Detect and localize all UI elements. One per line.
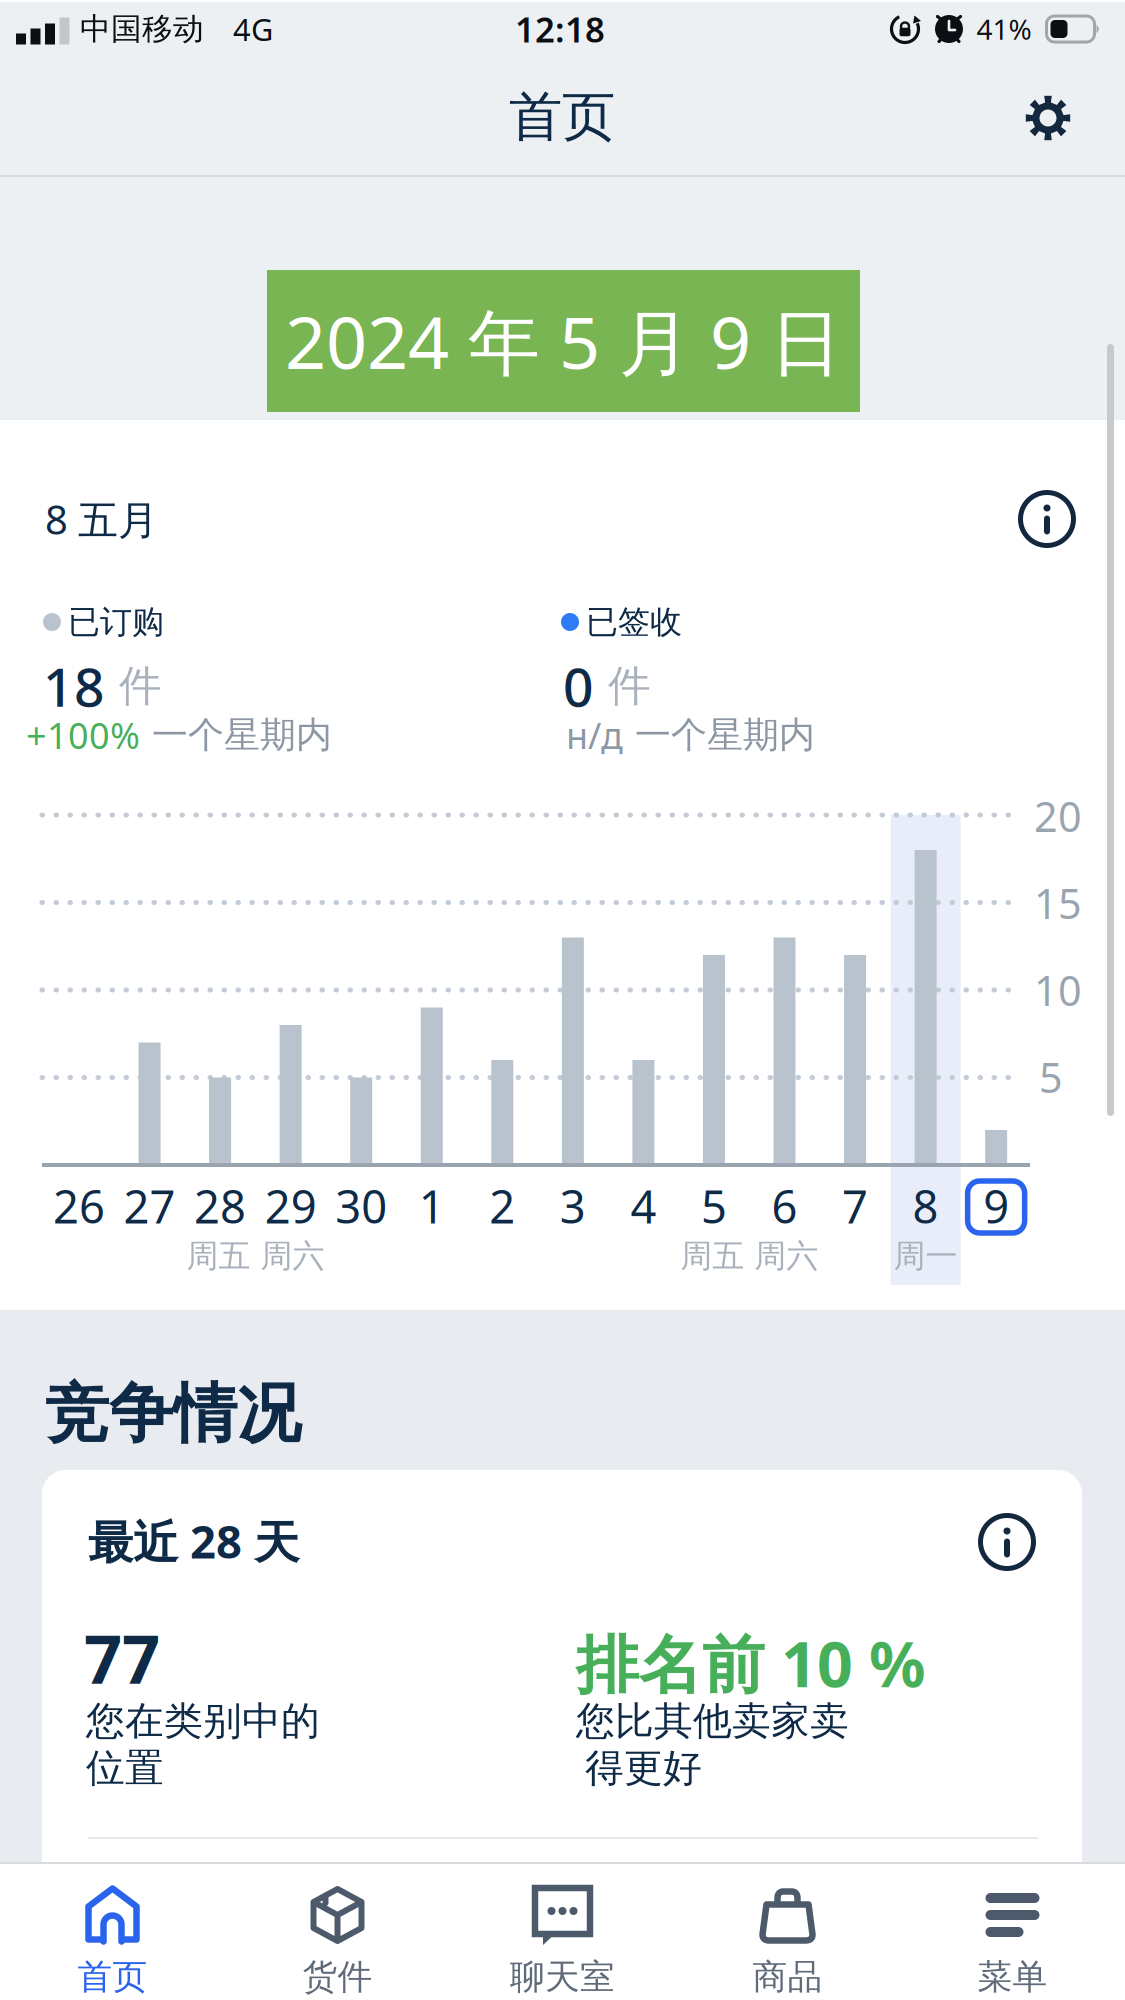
staticText: 15: [1034, 876, 1082, 930]
staticText: 聊天室: [510, 1956, 615, 1998]
staticText: 41%: [976, 10, 1031, 48]
staticText: 菜单: [977, 1956, 1047, 1998]
staticText: 2024 年 5 月 9 日: [285, 293, 842, 389]
staticText: 3: [560, 1176, 586, 1236]
staticText: 29: [265, 1176, 317, 1236]
staticText: 一个星期内: [152, 713, 332, 757]
button[interactable]: 菜单: [900, 1864, 1125, 1998]
button[interactable]: 信息: [979, 1514, 1035, 1570]
staticText: 20: [1034, 789, 1082, 843]
staticText: 一个星期内: [635, 713, 815, 757]
staticText: 已订购: [68, 602, 164, 642]
staticText: 5: [701, 1176, 727, 1236]
staticText: 件: [608, 660, 651, 712]
staticText: 77: [84, 1614, 160, 1702]
staticText: 7: [842, 1176, 868, 1236]
staticText: 4G: [233, 9, 273, 49]
staticText: 26: [53, 1176, 105, 1236]
staticText: 周五 周六: [680, 1236, 818, 1276]
staticText: 最近 28 天: [88, 1511, 299, 1571]
staticText: 您比其他卖家卖: [576, 1697, 849, 1745]
staticText: +100%: [26, 711, 140, 759]
staticText: 6: [771, 1176, 797, 1236]
staticText: 已签收: [586, 602, 682, 642]
staticText: 件: [119, 660, 162, 712]
staticText: 9: [983, 1176, 1009, 1236]
staticText: 竞争情况: [45, 1375, 301, 1453]
staticText: 18: [43, 651, 105, 721]
staticText: 10: [1034, 963, 1082, 1017]
staticText: 货件: [302, 1956, 372, 1998]
staticText: н/д: [566, 711, 623, 759]
staticText: 2: [489, 1176, 515, 1236]
staticText: 1: [419, 1176, 445, 1236]
staticText: 5: [1039, 1050, 1063, 1104]
button[interactable]: 商品: [675, 1864, 900, 1998]
button[interactable]: 信息: [1019, 491, 1075, 547]
staticText: 4: [630, 1176, 656, 1236]
staticText: 周一: [894, 1236, 958, 1276]
staticText: 8: [913, 1176, 939, 1236]
button[interactable]: 设置: [1016, 86, 1080, 150]
button[interactable]: 首页: [0, 1864, 225, 1998]
staticText: 周五 周六: [186, 1236, 324, 1276]
staticText: 8 五月: [45, 492, 158, 545]
staticText: 首页: [509, 84, 615, 150]
staticText: 30: [335, 1176, 387, 1236]
staticText: 27: [124, 1176, 176, 1236]
button[interactable]: 货件: [225, 1864, 450, 1998]
button[interactable]: 聊天室: [450, 1864, 675, 1998]
staticText: 位置: [86, 1744, 164, 1792]
staticText: 中国移动: [80, 10, 204, 48]
staticText: 首页: [77, 1956, 147, 1998]
staticText: 28: [194, 1176, 246, 1236]
staticText: 得更好: [585, 1744, 702, 1792]
staticText: 12:18: [515, 6, 605, 52]
staticText: 商品: [752, 1956, 822, 1998]
staticText: 您在类别中的: [86, 1697, 320, 1745]
staticText: 0: [563, 651, 594, 721]
staticText: 排名前 10 %: [576, 1621, 926, 1705]
